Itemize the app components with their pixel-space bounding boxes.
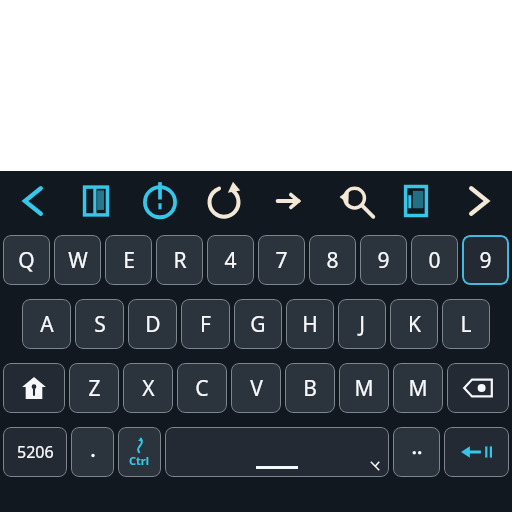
button[interactable]: Clipboard (390, 172, 442, 230)
button[interactable]: E (105, 235, 152, 285)
staticText: A (40, 310, 54, 339)
button[interactable]: Timer (134, 172, 186, 230)
button[interactable]: D (128, 299, 177, 349)
staticText: 8 (326, 246, 339, 275)
button[interactable]: L (442, 299, 490, 349)
button[interactable]: M (339, 363, 389, 413)
staticText: G (250, 310, 266, 339)
staticText: V (250, 374, 263, 403)
button[interactable]: W (54, 235, 101, 285)
staticText: 7 (275, 246, 288, 275)
button[interactable]: 9 (462, 235, 509, 285)
button[interactable]: F (181, 299, 230, 349)
button[interactable]: Backspace (447, 363, 509, 413)
staticText: 9 (377, 246, 390, 275)
staticText: F (200, 310, 211, 339)
button[interactable] (71, 427, 114, 477)
button[interactable]: 0 (411, 235, 458, 285)
staticText: J (359, 310, 365, 339)
staticText: R (173, 246, 187, 275)
staticText: S (94, 310, 106, 339)
staticText: M (354, 374, 374, 403)
staticText: W (68, 246, 88, 275)
button[interactable]: Q (3, 235, 50, 285)
staticText: Q (18, 246, 35, 275)
button[interactable]: M (393, 363, 443, 413)
staticText: C (195, 374, 209, 403)
button[interactable]: Redo (198, 172, 250, 230)
staticText: D (145, 310, 161, 339)
button[interactable]: B (285, 363, 335, 413)
staticText: 5206 (17, 441, 54, 463)
button[interactable]: 5206 (3, 427, 67, 477)
button[interactable]: Forward (262, 172, 314, 230)
button[interactable]: G (234, 299, 282, 349)
button[interactable]: V (231, 363, 281, 413)
button[interactable]: Z (69, 363, 119, 413)
button[interactable]: X (123, 363, 173, 413)
button[interactable]: 7 (258, 235, 305, 285)
staticText: K (408, 310, 421, 339)
staticText: 4 (224, 246, 237, 275)
staticText: 9 (479, 246, 492, 275)
button[interactable]: R (156, 235, 203, 285)
staticText: Ctrl (129, 453, 150, 468)
button[interactable] (393, 427, 440, 477)
staticText: M (408, 374, 428, 403)
button[interactable]: Control (118, 427, 161, 477)
button[interactable]: 9 (360, 235, 407, 285)
staticText: 0 (428, 246, 441, 275)
staticText: Z (88, 374, 101, 403)
button[interactable]: Search (326, 172, 378, 230)
button[interactable]: A (22, 299, 71, 349)
button[interactable]: Dictionary (70, 172, 122, 230)
button[interactable]: Enter (444, 427, 509, 477)
staticText: H (302, 310, 318, 339)
button[interactable]: Next (454, 172, 506, 230)
staticText: B (303, 374, 317, 403)
button[interactable]: Space (165, 427, 389, 477)
button[interactable]: J (338, 299, 386, 349)
button[interactable]: 4 (207, 235, 254, 285)
button[interactable]: S (75, 299, 124, 349)
staticText: E (123, 246, 135, 275)
button[interactable]: H (286, 299, 334, 349)
button[interactable]: K (390, 299, 438, 349)
staticText: X (142, 374, 155, 403)
button[interactable]: 8 (309, 235, 356, 285)
button[interactable]: Home (3, 363, 65, 413)
button[interactable]: C (177, 363, 227, 413)
staticText: L (460, 310, 472, 339)
button[interactable]: Previous (6, 172, 58, 230)
